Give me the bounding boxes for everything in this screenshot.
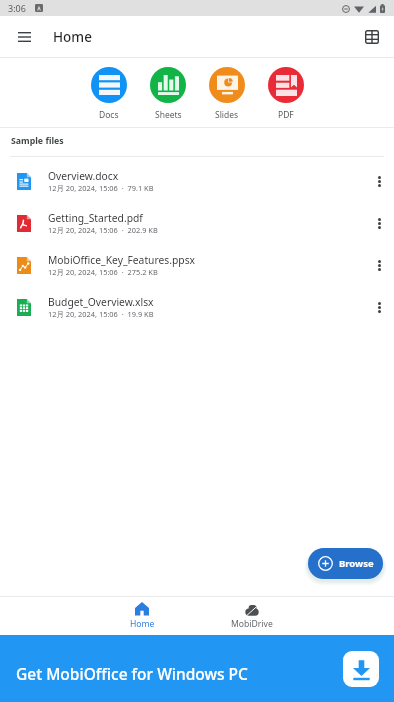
staticText: Budget_Overview.xlsx — [48, 295, 154, 309]
staticText: MobiOffice_Key_Features.ppsx — [48, 253, 196, 267]
button[interactable]: Getting_Started.pdf — [0, 202, 394, 244]
button[interactable]: Sheets — [150, 67, 186, 121]
button[interactable]: Slides — [209, 67, 245, 121]
button[interactable]: More options — [367, 253, 391, 277]
staticText: 12月 20, 2024, 15:06 · 79.1 KB — [48, 183, 154, 193]
button[interactable]: MobiOffice_Key_Features.ppsx — [0, 244, 394, 286]
staticText: Home — [53, 28, 92, 46]
staticText: Overview.docx — [48, 169, 119, 183]
button[interactable]: Grid view — [352, 17, 392, 57]
button[interactable]: MobiDrive — [224, 596, 280, 635]
staticText: Sample files — [11, 135, 64, 147]
staticText: Browse — [339, 557, 374, 570]
staticText: MobiDrive — [231, 618, 273, 630]
staticText: Sheets — [155, 109, 182, 121]
button[interactable]: Docs — [91, 67, 127, 121]
button[interactable]: PDF — [268, 67, 304, 121]
staticText: Docs — [99, 109, 119, 121]
staticText: Get MobiOffice for Windows PC — [16, 663, 248, 684]
staticText: 12月 20, 2024, 15:06 · 275.2 KB — [48, 267, 158, 277]
button[interactable]: Overview.docx — [0, 160, 394, 202]
staticText: Home — [130, 618, 155, 630]
staticText: 12月 20, 2024, 15:06 · 202.9 KB — [48, 225, 158, 235]
button[interactable]: More options — [367, 169, 391, 193]
staticText: 3:06 — [8, 2, 26, 14]
button[interactable]: More options — [367, 295, 391, 319]
staticText: Slides — [215, 109, 239, 121]
button[interactable]: Menu — [0, 16, 48, 58]
staticText: PDF — [278, 109, 294, 121]
button[interactable]: Budget_Overview.xlsx — [0, 286, 394, 328]
staticText: Getting_Started.pdf — [48, 211, 143, 225]
staticText: 12月 20, 2024, 15:06 · 19.9 KB — [48, 309, 154, 319]
button[interactable]: Home — [114, 596, 170, 635]
button[interactable]: Browse — [308, 548, 383, 579]
button[interactable]: More options — [367, 211, 391, 235]
button[interactable]: Download — [343, 651, 379, 687]
